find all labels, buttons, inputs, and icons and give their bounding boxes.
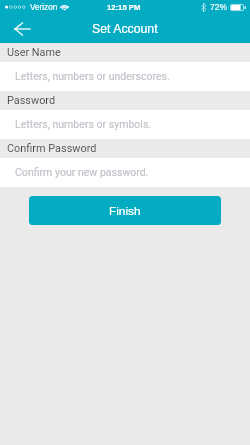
staticText: Confirm your new password.: [15, 166, 149, 178]
button[interactable]: Finish: [29, 196, 221, 225]
staticText: Verizon: [30, 3, 58, 12]
staticText: Letters, numbers or underscores.: [15, 70, 170, 82]
button[interactable]: Back: [15, 23, 30, 35]
staticText: Finish: [109, 204, 141, 217]
staticText: 72%: [210, 2, 228, 12]
staticText: Letters, numbers or symbols.: [15, 118, 152, 130]
staticText: 12:15 PM: [107, 3, 141, 12]
button[interactable]: Letters, numbers or underscores.: [0, 62, 250, 91]
staticText: User Name: [7, 46, 61, 59]
button[interactable]: Letters, numbers or symbols.: [0, 110, 250, 139]
staticText: Password: [7, 94, 56, 107]
staticText: Confirm Password: [7, 142, 97, 155]
staticText: Set Account: [92, 22, 158, 36]
button[interactable]: Confirm your new password.: [0, 158, 250, 187]
